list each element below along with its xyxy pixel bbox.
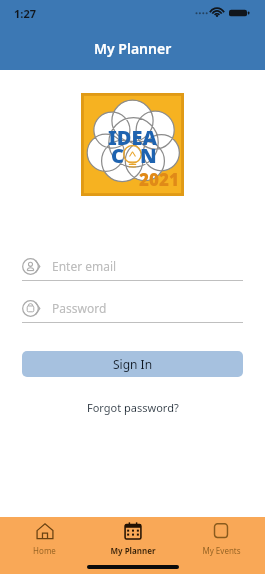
- staticText: My Planner: [110, 545, 156, 556]
- button[interactable]: Forgot password?: [79, 397, 187, 418]
- button[interactable]: Home: [0, 517, 89, 560]
- staticText: My Events: [202, 545, 241, 556]
- other: My Planner: [124, 522, 142, 540]
- button[interactable]: Enter email: [22, 255, 243, 281]
- other: My Events: [212, 522, 230, 540]
- button[interactable]: My Planner: [89, 517, 177, 560]
- staticText: Home: [33, 545, 56, 556]
- button[interactable]: My Events: [177, 517, 265, 560]
- staticText: C: [111, 142, 124, 169]
- staticText: N: [140, 142, 157, 169]
- staticText: Enter email: [52, 258, 117, 274]
- staticText: 1:27: [14, 6, 36, 21]
- other: Home: [36, 522, 54, 540]
- button[interactable]: Sign In: [22, 351, 243, 377]
- staticText: IDEA: [108, 124, 157, 151]
- staticText: My Planner: [94, 39, 172, 58]
- staticText: Sign In: [113, 356, 153, 372]
- staticText: Password: [52, 300, 107, 316]
- staticText: Forgot password?: [87, 400, 179, 415]
- button[interactable]: Password: [22, 297, 243, 323]
- staticText: 2021: [139, 168, 179, 191]
